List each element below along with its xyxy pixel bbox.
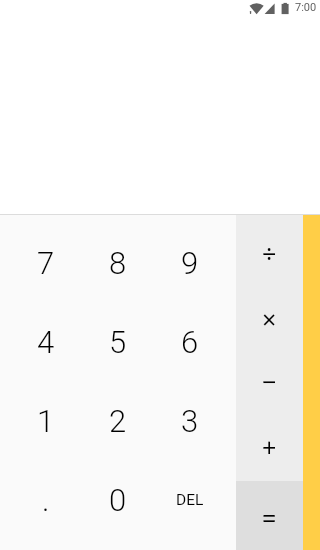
staticText: 9 [181, 245, 199, 281]
staticText: + [262, 430, 277, 464]
button[interactable]: − [236, 349, 303, 413]
button[interactable]: 9 [154, 224, 226, 302]
button[interactable]: 4 [10, 302, 82, 381]
button[interactable]: × [236, 285, 303, 349]
button[interactable]: . [10, 460, 82, 539]
staticText: 3 [181, 403, 199, 439]
staticText: DEL [176, 491, 204, 509]
staticText: 1 [37, 403, 55, 439]
button[interactable]: ÷ [236, 221, 303, 285]
staticText: − [262, 364, 277, 398]
button[interactable]: 5 [82, 302, 154, 381]
staticText: 7 [37, 245, 55, 281]
staticText: 0 [109, 482, 127, 518]
button[interactable]: = [236, 481, 303, 550]
staticText: 5 [109, 324, 127, 360]
staticText: ÷ [262, 236, 277, 270]
button[interactable]: 3 [154, 381, 226, 460]
staticText: = [262, 501, 277, 535]
staticText: × [262, 302, 277, 336]
button[interactable]: 8 [82, 224, 154, 302]
button[interactable]: 7 [10, 224, 82, 302]
staticText: 7:00 [295, 1, 317, 14]
staticText: 2 [109, 403, 127, 439]
staticText: 4 [37, 324, 55, 360]
button[interactable]: 0 [82, 460, 154, 539]
staticText: . [42, 482, 50, 518]
button[interactable]: 2 [82, 381, 154, 460]
button[interactable]: DEL [154, 460, 226, 539]
button[interactable]: 1 [10, 381, 82, 460]
button[interactable]: + [236, 413, 303, 477]
button[interactable]: 6 [154, 302, 226, 381]
staticText: 6 [181, 324, 199, 360]
staticText: 8 [109, 245, 127, 281]
